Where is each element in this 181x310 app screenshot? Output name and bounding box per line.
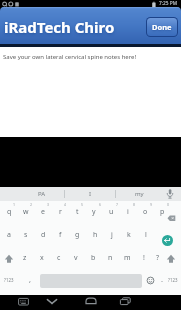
staticText: p: [160, 207, 165, 217]
button[interactable]: .: [153, 269, 171, 289]
button[interactable]: t: [68, 201, 86, 222]
button[interactable]: ?123: [0, 270, 19, 290]
staticText: y: [92, 207, 96, 217]
staticText: Done: [152, 22, 172, 32]
staticText: m: [124, 253, 131, 263]
staticText: q: [7, 207, 12, 217]
button[interactable]: [46, 297, 58, 306]
staticText: k: [127, 230, 131, 240]
button[interactable]: l: [137, 224, 155, 245]
button[interactable]: c: [50, 247, 68, 268]
staticText: g: [75, 230, 80, 240]
button[interactable]: a: [0, 224, 18, 245]
button[interactable]: r: [51, 201, 69, 222]
staticText: d: [41, 230, 46, 240]
staticText: 3: [47, 202, 50, 207]
staticText: r: [59, 207, 62, 217]
button[interactable]: [162, 235, 173, 246]
button[interactable]: h: [86, 224, 104, 245]
button[interactable]: ?123: [163, 270, 181, 290]
button[interactable]: s: [17, 224, 35, 245]
button[interactable]: [18, 297, 29, 306]
button[interactable]: ,: [21, 269, 39, 289]
button[interactable]: b: [84, 247, 102, 268]
staticText: my: [135, 190, 144, 198]
button[interactable]: [165, 253, 177, 265]
staticText: 2: [30, 202, 33, 207]
button[interactable]: x: [33, 247, 51, 268]
staticText: t: [76, 207, 79, 217]
staticText: I: [89, 190, 92, 198]
button[interactable]: [85, 296, 97, 306]
button[interactable]: i: [119, 201, 137, 222]
button[interactable]: u: [102, 201, 120, 222]
staticText: f: [59, 230, 62, 240]
staticText: o: [143, 207, 148, 217]
staticText: z: [23, 253, 27, 263]
staticText: ?: [156, 253, 160, 263]
button[interactable]: p: [153, 201, 171, 222]
button[interactable]: o: [136, 201, 154, 222]
staticText: b: [91, 253, 96, 263]
button[interactable]: w: [17, 201, 35, 222]
staticText: h: [93, 230, 98, 240]
staticText: ?123: [4, 277, 14, 283]
staticText: i: [127, 207, 129, 217]
staticText: v: [74, 253, 78, 263]
button[interactable]: q: [0, 201, 18, 222]
staticText: ,: [29, 274, 32, 284]
button[interactable]: z: [16, 247, 34, 268]
button[interactable]: m: [118, 247, 136, 268]
staticText: j: [111, 230, 113, 240]
staticText: 0: [167, 202, 170, 207]
staticText: u: [109, 207, 114, 217]
button[interactable]: !: [135, 247, 153, 268]
staticText: 6: [99, 202, 102, 207]
staticText: !: [143, 253, 145, 263]
button[interactable]: PA: [22, 187, 62, 200]
staticText: c: [57, 253, 61, 263]
button[interactable]: [146, 276, 155, 285]
button[interactable]: v: [67, 247, 85, 268]
button[interactable]: Done: [146, 17, 178, 37]
staticText: 9: [150, 202, 153, 207]
staticText: s: [24, 230, 28, 240]
button[interactable]: [119, 296, 132, 306]
button[interactable]: [3, 253, 15, 265]
staticText: .: [161, 274, 164, 284]
staticText: 7: [116, 202, 119, 207]
staticText: iRadTech Chiro: [4, 17, 115, 37]
staticText: 5: [81, 202, 84, 207]
button[interactable]: my: [119, 187, 159, 200]
staticText: Save your own lateral cervical spine not…: [3, 53, 137, 61]
button[interactable]: I: [70, 187, 110, 200]
button[interactable]: [165, 188, 175, 200]
staticText: a: [7, 230, 11, 240]
staticText: l: [145, 230, 147, 240]
button[interactable]: e: [34, 201, 52, 222]
staticText: PA: [38, 190, 46, 198]
staticText: e: [41, 207, 45, 217]
button[interactable]: ?: [149, 247, 167, 268]
staticText: 7:25 PM: [159, 0, 178, 7]
button[interactable]: n: [101, 247, 119, 268]
button[interactable]: y: [85, 201, 103, 222]
button[interactable]: j: [103, 224, 121, 245]
button[interactable]: g: [68, 224, 86, 245]
button[interactable]: [166, 213, 177, 223]
staticText: 8: [133, 202, 136, 207]
staticText: x: [40, 253, 44, 263]
staticText: 1: [13, 202, 16, 207]
button[interactable]: f: [51, 224, 69, 245]
button[interactable]: d: [34, 224, 52, 245]
staticText: ?123: [168, 277, 178, 283]
staticText: 4: [64, 202, 67, 207]
staticText: n: [108, 253, 113, 263]
button[interactable]: k: [120, 224, 138, 245]
staticText: w: [23, 207, 29, 217]
